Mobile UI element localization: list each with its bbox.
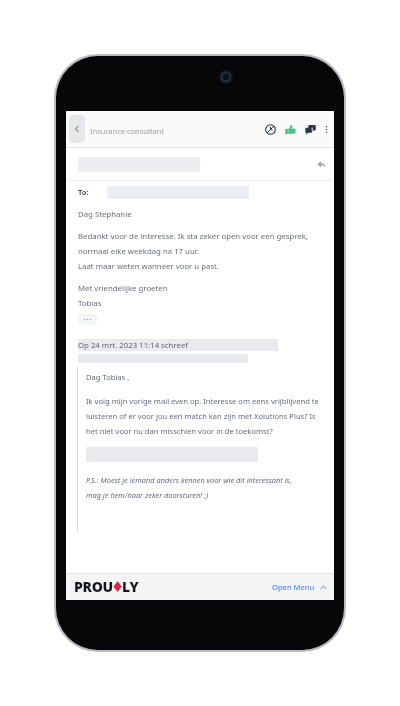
staticText: Ik volg mijn vorige mail even op. Intere… — [86, 396, 319, 406]
staticText: mag je hem/haar zeker doorsturen! ;) — [86, 490, 209, 500]
staticText: Open Menu — [272, 582, 315, 592]
staticText: PROU — [74, 577, 113, 596]
staticText: luisteren of er voor jou een match kan z… — [86, 411, 316, 421]
staticText: Dag Tobias , — [86, 372, 130, 382]
button[interactable]: Like — [282, 121, 298, 137]
staticText: normaal elke weekdag na 17 uur. — [78, 246, 199, 257]
button[interactable]: Show trimmed content — [78, 314, 97, 325]
staticText: To: — [78, 187, 89, 197]
staticText: het niet voor nu dan misschien voor in d… — [86, 426, 273, 436]
staticText: P.S.: Moest je iemand anders kennen voor… — [86, 475, 292, 485]
button[interactable]: Reply — [314, 157, 328, 171]
button[interactable]: Snooze — [262, 121, 278, 137]
staticText: Op 24 mrt. 2023 11:14 schreef — [78, 340, 188, 351]
staticText: Met vriendelijke groeten — [78, 283, 168, 294]
staticText: LY — [122, 577, 139, 596]
button[interactable]: Back — [69, 115, 85, 143]
button[interactable]: Open Menu — [272, 582, 327, 592]
button[interactable]: More options — [321, 124, 331, 134]
staticText: Laat maar weten wanneer voor u past. — [78, 261, 220, 272]
staticText: Bedankt voor de interesse. Ik sta zeker … — [78, 231, 308, 242]
staticText: Dag Stephanie — [78, 209, 132, 220]
staticText: Tobias — [78, 298, 102, 309]
staticText: Insurance consultant — [90, 126, 165, 136]
button[interactable]: Comments — [302, 121, 318, 137]
